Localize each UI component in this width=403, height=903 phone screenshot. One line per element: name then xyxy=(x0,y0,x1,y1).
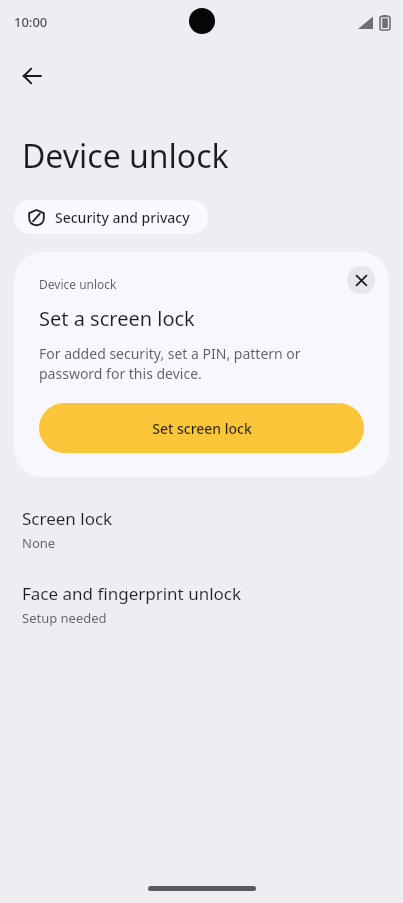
staticText: Security and privacy xyxy=(55,208,190,227)
staticText: Face and fingerprint unlock xyxy=(22,582,242,605)
button[interactable]: Dismiss xyxy=(347,266,375,294)
staticText: Device unlock xyxy=(22,134,229,178)
staticText: Device unlock xyxy=(39,276,117,292)
staticText: None xyxy=(22,534,56,552)
button[interactable]: Set screen lock xyxy=(39,403,364,453)
button[interactable]: Back xyxy=(8,52,56,100)
staticText: Setup needed xyxy=(22,609,107,627)
button[interactable]: Security and privacy xyxy=(14,200,208,234)
staticText: 10:00 xyxy=(14,13,48,31)
button[interactable]: Screen lock xyxy=(0,505,403,554)
staticText: Screen lock xyxy=(22,507,113,530)
staticText: For added security, set a PIN, pattern o… xyxy=(39,344,364,383)
staticText: Set a screen lock xyxy=(39,305,195,332)
button[interactable]: Face and fingerprint unlock xyxy=(0,580,403,629)
staticText: Set screen lock xyxy=(152,419,252,438)
